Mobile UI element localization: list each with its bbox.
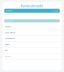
staticText: IBAN DE00 0000 xyxy=(4,14,15,16)
staticText: Karten xyxy=(4,43,9,45)
staticText: Daueraufträge xyxy=(4,32,15,33)
button[interactable]: Service xyxy=(2,53,61,59)
staticText: Service xyxy=(4,55,10,57)
staticText: 1.234,56 xyxy=(52,10,58,12)
staticText: Verfügbar xyxy=(6,20,14,22)
button[interactable]: Karten xyxy=(2,42,61,47)
button[interactable]: Daueraufträge xyxy=(2,30,61,36)
button[interactable]: Umsätze xyxy=(2,24,61,30)
button[interactable]: Überweisung xyxy=(2,36,61,42)
staticText: Umsätze xyxy=(4,26,10,28)
button[interactable]: Limits xyxy=(2,47,61,53)
staticText: Limits xyxy=(4,49,7,51)
staticText: Überweisung xyxy=(4,38,14,39)
staticText: Kontoübersicht xyxy=(21,4,43,8)
staticText: Guthaben xyxy=(6,10,13,12)
